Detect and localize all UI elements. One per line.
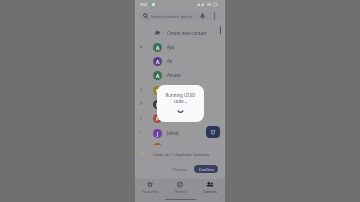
staticText: Ajio: [167, 44, 175, 50]
staticText: Confirm: [199, 167, 214, 172]
button[interactable]: Recent: [166, 179, 194, 196]
staticText: Search contacts and pl...: [151, 14, 196, 19]
staticText: 5:54: [140, 2, 148, 7]
staticText: Dawit: [167, 101, 179, 107]
staticText: J: [140, 130, 141, 135]
staticText: M: [155, 144, 160, 151]
button[interactable]: F: [135, 111, 225, 125]
button[interactable]: A: [135, 68, 225, 82]
staticText: F: [156, 115, 159, 122]
button[interactable]: Contacts: [196, 179, 224, 196]
staticText: F: [140, 116, 142, 121]
button[interactable]: D: [135, 97, 225, 111]
staticText: Amare: [167, 72, 181, 78]
button[interactable]: Create new contact: [135, 26, 225, 40]
button[interactable]: Dismiss: [171, 165, 189, 173]
staticText: C: [156, 87, 160, 94]
staticText: D: [156, 101, 160, 108]
button[interactable]: Confirm: [194, 165, 218, 173]
staticText: 94: [207, 2, 212, 7]
button[interactable]: M: [135, 140, 225, 154]
staticText: A: [156, 58, 160, 65]
staticText: C: [140, 87, 143, 92]
staticText: A: [156, 72, 160, 79]
button[interactable]: A: [135, 54, 225, 68]
button[interactable]: Search contacts and pl...: [139, 11, 222, 21]
staticText: Favourites: [142, 189, 159, 194]
staticText: Running USSD code...: [157, 92, 204, 104]
staticText: Dismiss: [173, 167, 188, 172]
button[interactable]: Favourites: [136, 179, 164, 196]
staticText: A: [156, 44, 160, 51]
button[interactable]: C: [135, 83, 225, 97]
staticText: D: [140, 101, 143, 106]
staticText: J: [157, 130, 159, 137]
staticText: A: [140, 44, 143, 49]
button[interactable]: A: [135, 40, 225, 54]
staticText: An: [167, 58, 173, 64]
button[interactable]: Dialpad: [206, 126, 220, 138]
staticText: Recent: [175, 189, 186, 194]
staticText: Clean up 1 duplicate contacts: [153, 152, 210, 158]
button[interactable]: J: [135, 126, 225, 140]
staticText: Jahed: [167, 130, 179, 136]
staticText: Contacts: [203, 189, 217, 194]
staticText: Create new contact: [167, 30, 207, 36]
